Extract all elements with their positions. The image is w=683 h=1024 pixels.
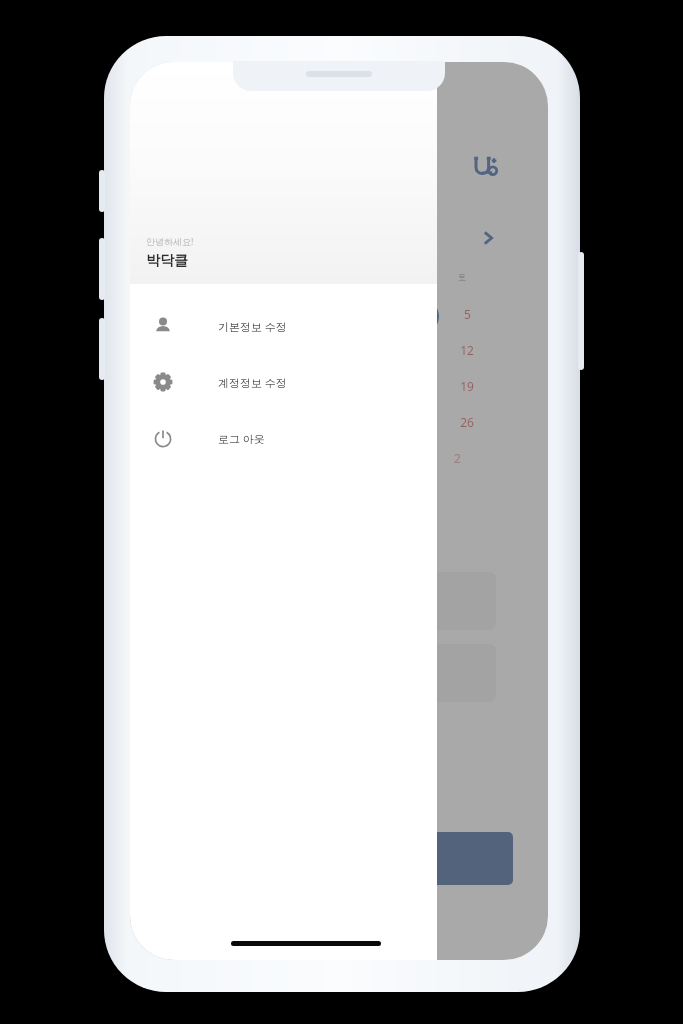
staticText: 2 xyxy=(454,450,461,466)
staticText: 토 xyxy=(458,272,466,282)
button[interactable]: Next month xyxy=(478,228,498,248)
button[interactable]: Clinic logo xyxy=(470,154,500,184)
staticText: 19 xyxy=(460,378,474,394)
staticText: 박닥클 xyxy=(146,252,188,270)
other: Settings xyxy=(153,372,173,392)
staticText: 계정정보 수정 xyxy=(218,375,287,390)
staticText: 26 xyxy=(460,414,474,430)
button[interactable] xyxy=(402,298,439,335)
staticText: 12 xyxy=(460,342,474,358)
button[interactable]: Profile xyxy=(130,298,437,354)
button[interactable] xyxy=(380,832,513,885)
button[interactable]: 4:49 PM xyxy=(366,572,496,630)
button[interactable]: 4:50 PM xyxy=(366,644,496,702)
button[interactable]: Log out xyxy=(130,410,437,466)
staticText: 5 xyxy=(464,306,471,322)
staticText: 안녕하세요! xyxy=(146,235,194,247)
other: Log out xyxy=(153,428,173,448)
button[interactable]: Settings xyxy=(130,354,437,410)
staticText: 기본정보 수정 xyxy=(218,319,287,334)
other: Profile xyxy=(153,316,173,336)
staticText: 로그 아웃 xyxy=(218,431,265,446)
